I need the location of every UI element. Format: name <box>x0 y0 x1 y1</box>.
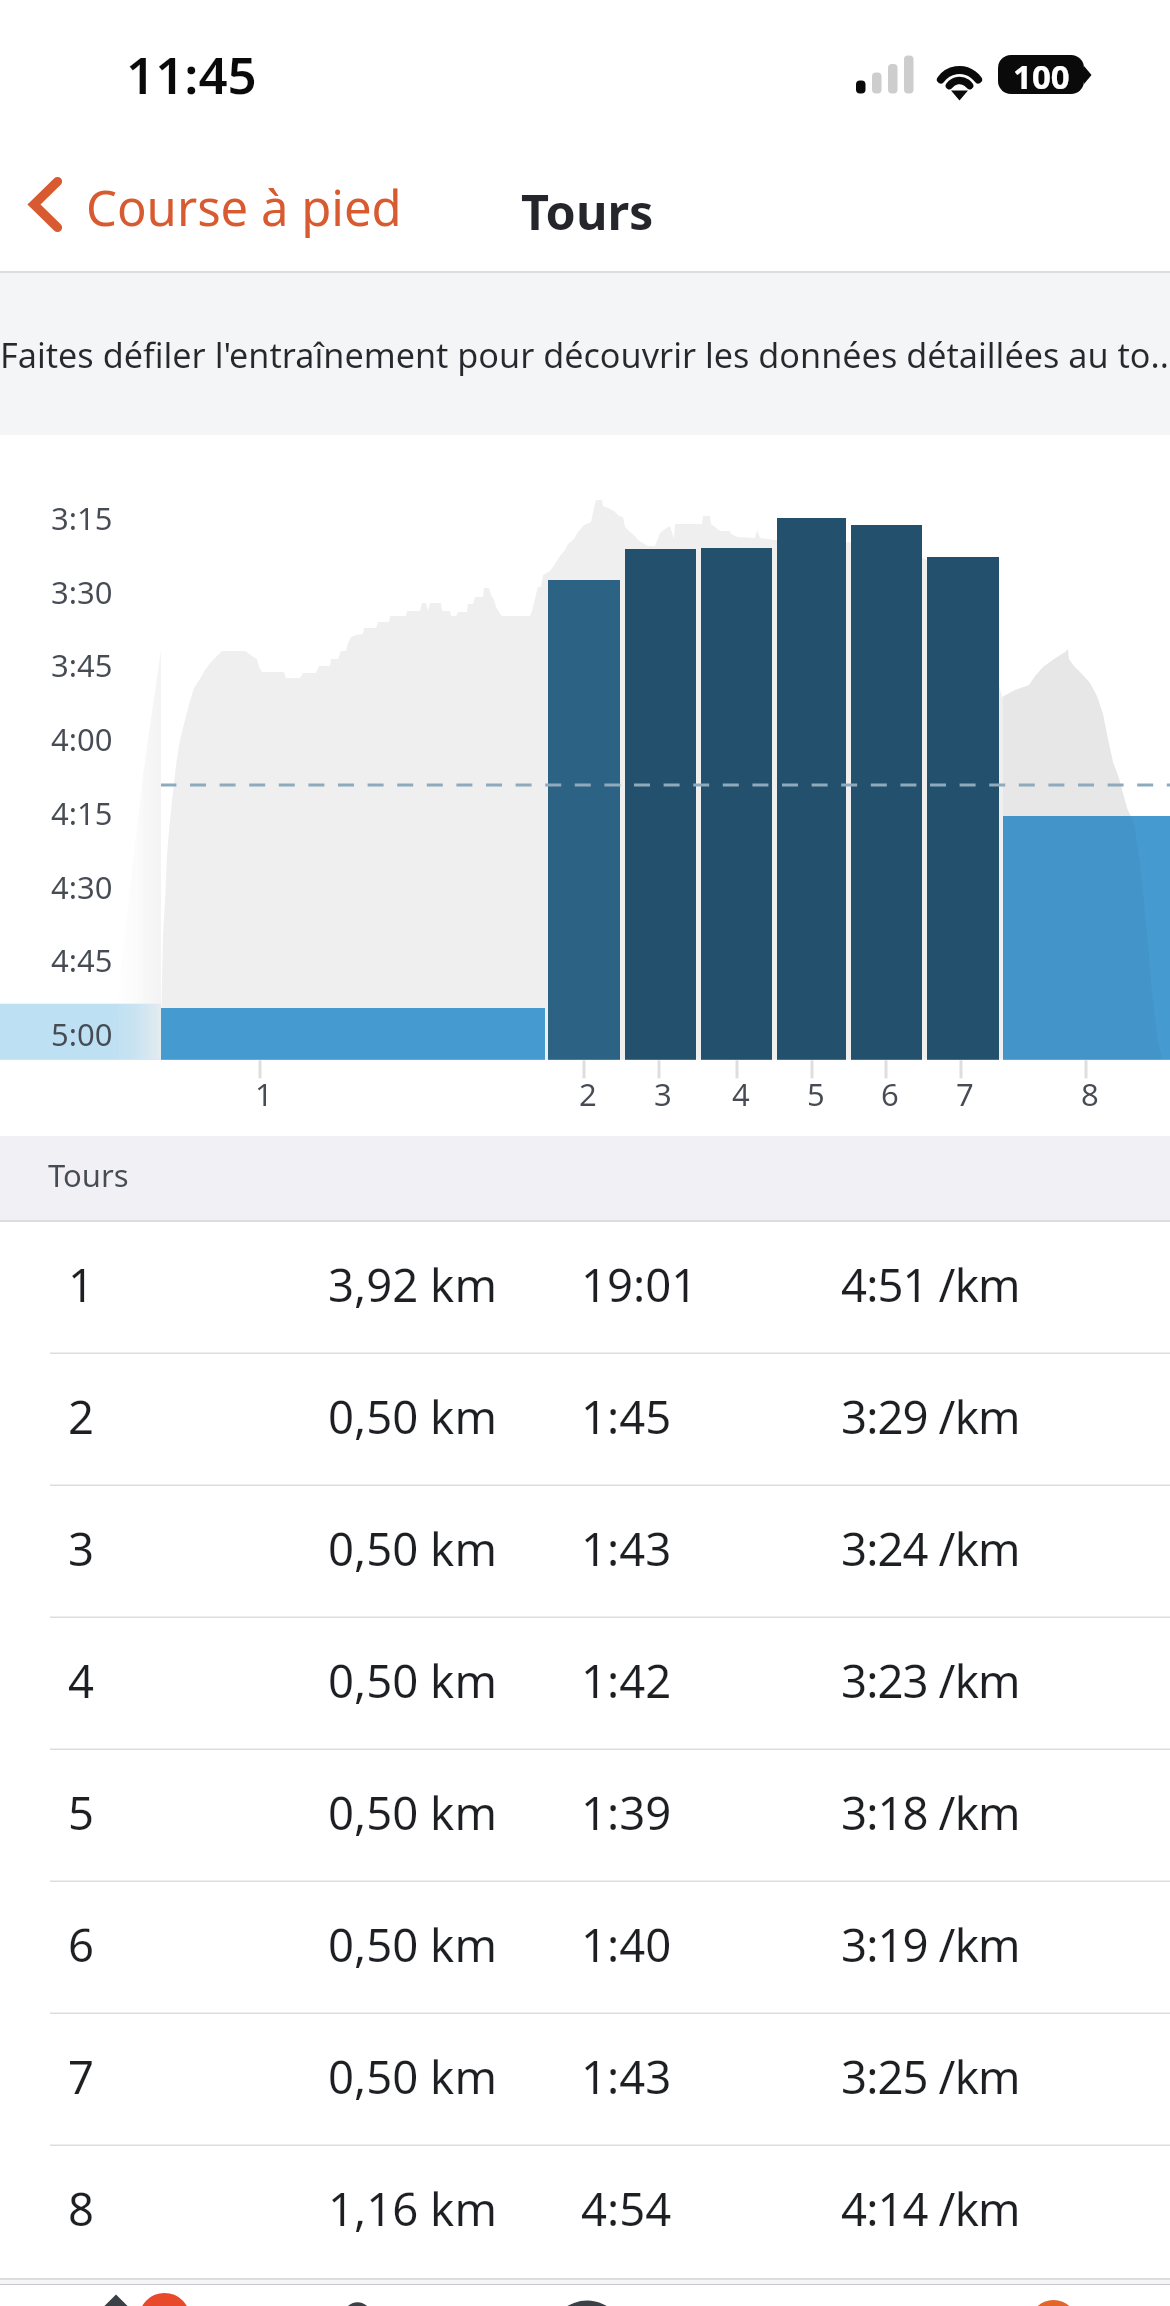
staticText: 1:45 <box>581 1385 672 1447</box>
staticText: 4 <box>732 1073 750 1115</box>
staticText: 1:43 <box>581 1517 672 1579</box>
staticText: 4 <box>68 1649 95 1711</box>
staticText: 1:42 <box>581 1649 672 1711</box>
staticText: 3:30 <box>51 571 113 613</box>
staticText: 6 <box>68 1913 95 1975</box>
staticText: 5 <box>68 1781 95 1843</box>
staticText: 4:15 <box>51 792 113 834</box>
staticText: Tours <box>48 1154 129 1196</box>
button[interactable]: 3 <box>0 1486 1170 1618</box>
staticText: 1 <box>255 1073 273 1115</box>
staticText: 4:45 <box>51 939 113 981</box>
staticText: 1:43 <box>581 2045 672 2107</box>
staticText: 2 <box>579 1073 597 1115</box>
staticText: 0,50 km <box>328 1913 497 1975</box>
staticText: 7 <box>956 1073 974 1115</box>
staticText: 100 <box>1013 55 1070 93</box>
button[interactable]: 8 <box>0 2146 1170 2278</box>
button[interactable]: 2 <box>0 1354 1170 1486</box>
button[interactable]: 4 <box>0 1618 1170 1750</box>
staticText: Tours <box>521 178 654 244</box>
staticText: 0,50 km <box>328 1517 497 1579</box>
staticText: 4:30 <box>51 866 113 908</box>
staticText: 5 <box>807 1073 825 1115</box>
staticText: 3:23 /km <box>841 1649 1020 1711</box>
button[interactable]: Enregistrer <box>468 2285 702 2306</box>
staticText: Course à pied <box>86 174 402 241</box>
staticText: 1:39 <box>581 1781 672 1843</box>
staticText: 7 <box>68 2045 95 2107</box>
button[interactable]: Carte <box>234 2285 468 2306</box>
staticText: 8 <box>68 2177 95 2239</box>
staticText: 3:24 /km <box>841 1517 1020 1579</box>
staticText: 3:29 /km <box>841 1385 1020 1447</box>
staticText: 3:25 /km <box>841 2045 1020 2107</box>
button[interactable]: 6 <box>0 1882 1170 2014</box>
button[interactable]: Profil <box>936 2285 1170 2306</box>
staticText: 2 <box>68 1385 95 1447</box>
button[interactable]: 1 <box>0 1222 1170 1354</box>
staticText: 6 <box>881 1073 899 1115</box>
staticText: 1:40 <box>581 1913 672 1975</box>
staticText: 3,92 km <box>328 1253 497 1315</box>
button[interactable]: Accueil <box>0 2285 234 2306</box>
staticText: 0,50 km <box>328 1649 497 1711</box>
staticText: 4:14 /km <box>841 2177 1020 2239</box>
staticText: 4:54 <box>581 2177 672 2239</box>
staticText: 19:01 <box>581 1253 698 1315</box>
staticText: 3:18 /km <box>841 1781 1020 1843</box>
staticText: 4:00 <box>51 718 113 760</box>
staticText: 5:00 <box>51 1013 113 1055</box>
button[interactable]: Course à pied <box>0 149 420 271</box>
button[interactable]: 7 <box>0 2014 1170 2146</box>
staticText: Faites défiler l'entraînement pour décou… <box>0 331 1170 378</box>
staticText: 3:15 <box>51 497 113 539</box>
staticText: 3:19 /km <box>841 1913 1020 1975</box>
staticText: 3 <box>654 1073 672 1115</box>
staticText: 11:45 <box>126 39 257 108</box>
button[interactable]: 5 <box>0 1750 1170 1882</box>
staticText: 4:51 /km <box>841 1253 1020 1315</box>
staticText: 1,16 km <box>328 2177 497 2239</box>
staticText: 3:45 <box>51 644 113 686</box>
staticText: 1 <box>68 1253 95 1315</box>
staticText: 0,50 km <box>328 2045 497 2107</box>
staticText: 8 <box>1081 1073 1099 1115</box>
staticText: 3 <box>68 1517 95 1579</box>
staticText: 0,50 km <box>328 1385 497 1447</box>
staticText: 0,50 km <box>328 1781 497 1843</box>
